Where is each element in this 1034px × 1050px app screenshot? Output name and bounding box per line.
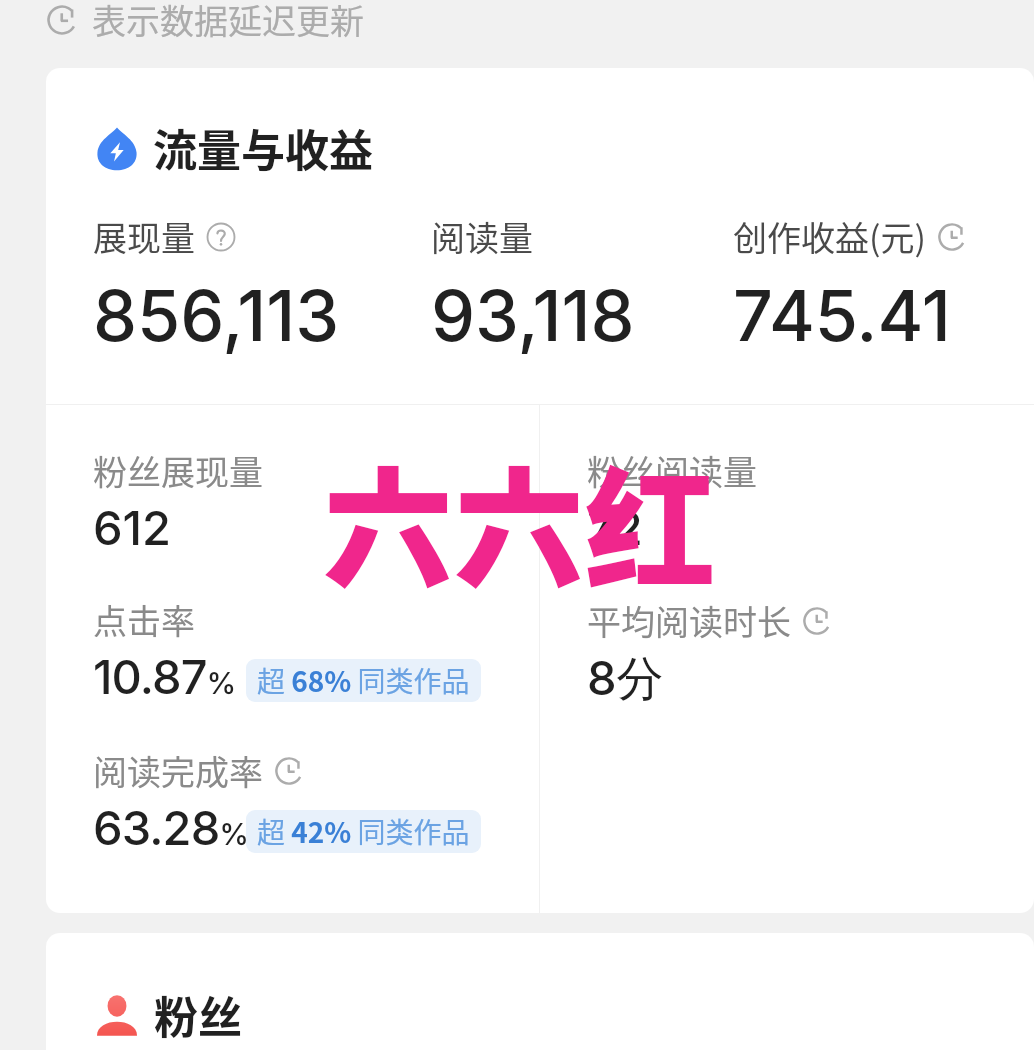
staticText: 粉丝展现量 xyxy=(93,446,263,495)
staticText: 93,118 xyxy=(431,273,635,358)
other: Delayed xyxy=(937,222,967,252)
other: Delayed xyxy=(274,756,304,786)
staticText: 72 xyxy=(587,499,643,556)
staticText: 超 68% 同类作品 xyxy=(257,660,470,701)
button[interactable]: 创作收益(元) xyxy=(733,212,967,358)
button[interactable]: 粉丝阅读量 xyxy=(587,446,757,556)
staticText: 平均阅读时长 xyxy=(587,596,791,645)
button[interactable]: 粉丝展现量 xyxy=(93,446,263,556)
button[interactable]: 超 68% 同类作品 xyxy=(246,659,481,702)
button[interactable]: 超 42% 同类作品 xyxy=(246,810,481,853)
staticText: 超 42% 同类作品 xyxy=(257,811,470,852)
other: Delayed xyxy=(802,606,832,636)
other: Help xyxy=(206,222,236,252)
staticText: 流量与收益 xyxy=(153,116,373,180)
staticText: 表示数据延迟更新 xyxy=(92,0,364,44)
staticText: 阅读量 xyxy=(431,212,533,261)
button[interactable]: Delayed data xyxy=(46,0,364,44)
staticText: 粉丝阅读量 xyxy=(587,446,757,495)
button[interactable]: 阅读量 xyxy=(431,212,635,358)
staticText: 63.28% xyxy=(93,799,249,856)
staticText: 粉丝 xyxy=(154,983,242,1047)
staticText: 点击率 xyxy=(93,595,195,644)
staticText: 展现量 xyxy=(93,212,195,261)
staticText: 856,113 xyxy=(93,273,340,358)
button[interactable]: 流量与收益 xyxy=(94,116,373,180)
button[interactable]: 平均阅读时长 xyxy=(587,596,832,708)
button[interactable]: 展现量 xyxy=(93,212,340,358)
staticText: 创作收益(元) xyxy=(733,212,926,261)
staticText: 612 xyxy=(93,499,172,556)
staticText: 745.41 xyxy=(733,273,951,358)
other: Delayed data xyxy=(46,4,78,36)
staticText: 10.87% xyxy=(93,648,236,705)
staticText: 阅读完成率 xyxy=(93,746,263,795)
button[interactable]: 粉丝 xyxy=(95,983,242,1047)
staticText: 六六红 xyxy=(323,426,717,616)
staticText: 8分 xyxy=(587,649,664,708)
